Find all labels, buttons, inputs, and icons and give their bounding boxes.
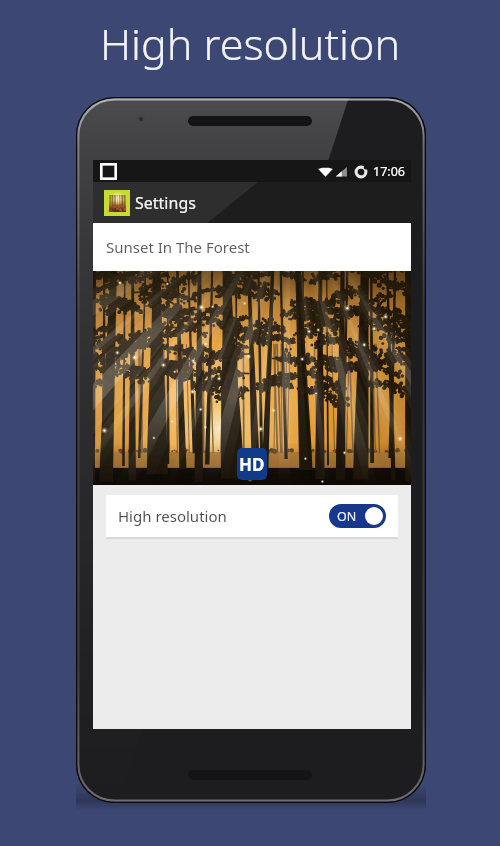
staticText: Sunset In The Forest xyxy=(106,237,250,257)
staticText: HD xyxy=(239,453,265,476)
staticText: High resolution xyxy=(118,506,227,526)
button[interactable]: High resolution xyxy=(106,495,398,537)
staticText: 17:06 xyxy=(373,163,405,180)
staticText: Settings xyxy=(135,192,196,214)
button[interactable]: High resolution toggle, on xyxy=(329,504,386,528)
staticText: High resolution xyxy=(100,14,401,73)
other: Recent apps xyxy=(100,163,117,180)
button[interactable]: Settings xyxy=(93,182,411,223)
staticText: ON xyxy=(337,508,357,525)
